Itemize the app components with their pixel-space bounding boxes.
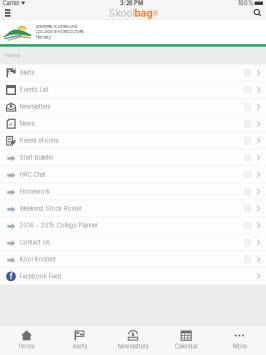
staticText: News <box>20 120 35 127</box>
staticText: More <box>232 343 246 350</box>
button[interactable]: Kool Kontent <box>0 251 266 268</box>
button[interactable]: Staff Bulletin <box>0 149 266 166</box>
button[interactable]: Newsletters <box>106 325 160 355</box>
staticText: WESTERN AUSTRALIAN <box>35 24 77 29</box>
staticText: Staff Bulletin <box>20 154 53 161</box>
staticText: Events List <box>20 86 49 93</box>
staticText: 3:26 PM <box>120 0 143 7</box>
staticText: bag <box>134 7 152 19</box>
button[interactable]: Alerts <box>53 325 106 355</box>
staticText: Newsletters <box>20 103 51 110</box>
button[interactable]: Events List <box>0 81 266 98</box>
staticText: Newsletters <box>117 343 148 350</box>
staticText: Alerts <box>72 343 87 350</box>
staticText: Parent eForms <box>20 137 59 144</box>
button[interactable]: Home <box>0 325 53 355</box>
button[interactable]: HAC Chat <box>0 166 266 183</box>
staticText: Alerts <box>20 69 35 76</box>
staticText: Contact Us <box>20 239 50 246</box>
staticText: Skool <box>108 7 134 19</box>
button[interactable]: Parent eForms <box>0 132 266 149</box>
button[interactable]: More <box>213 325 266 355</box>
button[interactable]: Alerts <box>0 64 266 81</box>
staticText: Kool Kontent <box>20 256 56 263</box>
button[interactable]: Homework <box>0 183 266 200</box>
button[interactable]: Menu <box>0 6 13 20</box>
staticText: Home <box>19 343 35 350</box>
staticText: 100% <box>238 0 253 7</box>
button[interactable]: Newsletters <box>0 98 266 115</box>
staticText: f <box>9 271 12 281</box>
staticText: Calendar <box>175 343 198 350</box>
staticText: HAC Chat <box>20 171 46 178</box>
staticText: Harvey <box>35 34 51 40</box>
button[interactable]: Calendar <box>160 325 213 355</box>
staticText: Weekend Stock Roster <box>20 205 82 212</box>
button[interactable]: f <box>0 268 266 285</box>
staticText: 2014 - 2015 College Planner <box>20 222 98 229</box>
button[interactable]: Weekend Stock Roster <box>0 200 266 217</box>
staticText: Home <box>5 52 20 59</box>
staticText: COLLEGE of AGRICULTURE <box>35 29 83 34</box>
button[interactable]: 2014 - 2015 College Planner <box>0 217 266 234</box>
staticText: Homework <box>20 188 50 195</box>
button[interactable]: News <box>0 115 266 132</box>
staticText: Carrier <box>2 0 19 7</box>
button[interactable]: Contact Us <box>0 234 266 251</box>
staticText: Facebook Feed <box>20 273 62 280</box>
button[interactable]: Search <box>251 6 266 20</box>
